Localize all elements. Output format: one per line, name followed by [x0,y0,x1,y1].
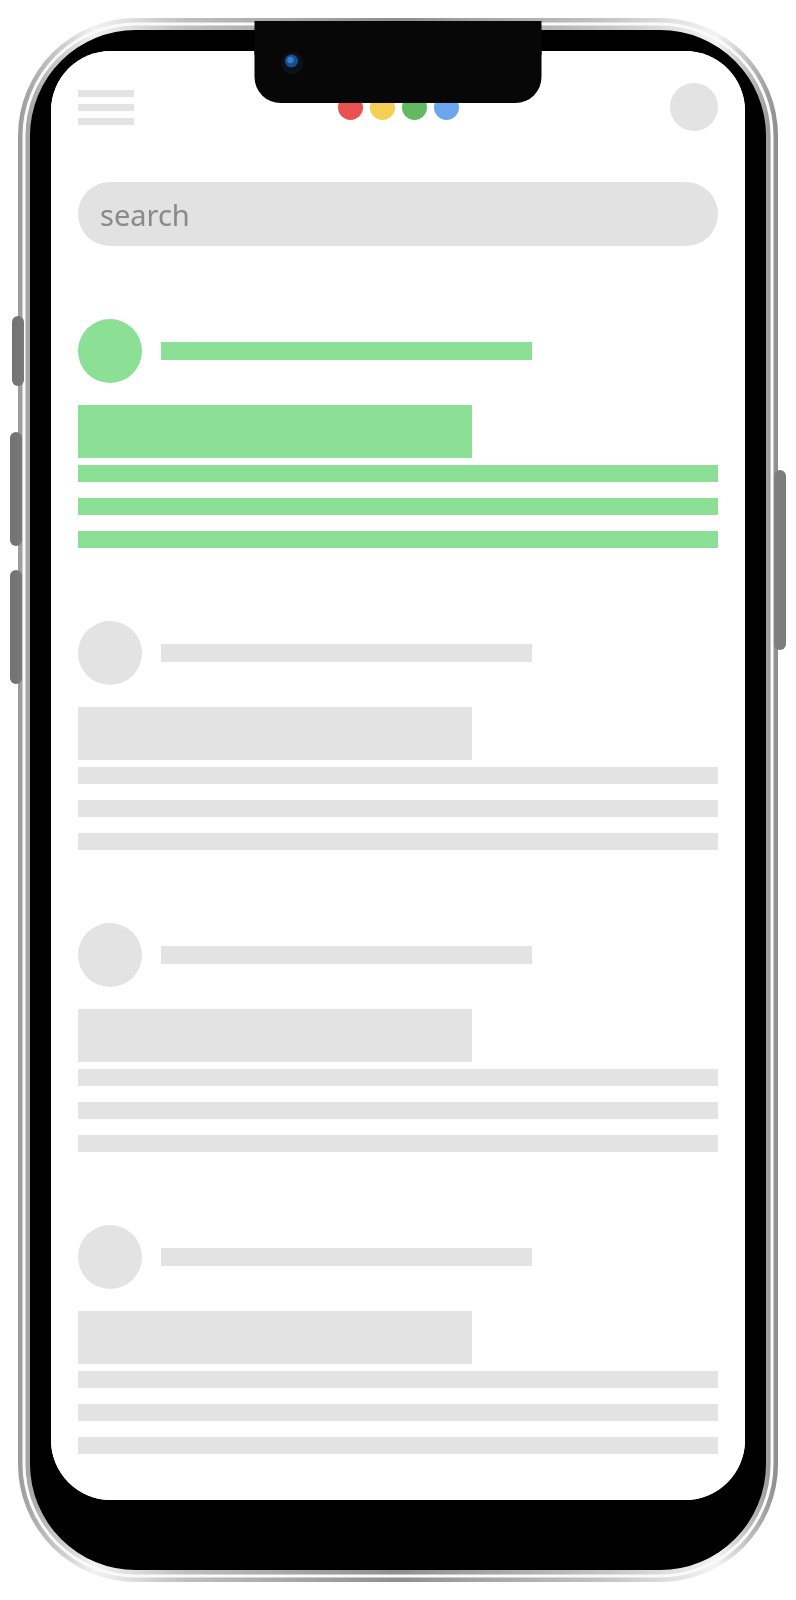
button[interactable] [78,319,718,548]
button[interactable]: Menu [78,87,134,127]
staticText: search [100,195,190,234]
button[interactable] [78,621,718,850]
button[interactable] [78,923,718,1152]
button[interactable]: Account [670,83,718,131]
button[interactable]: search [78,182,718,246]
button[interactable] [78,1225,718,1454]
